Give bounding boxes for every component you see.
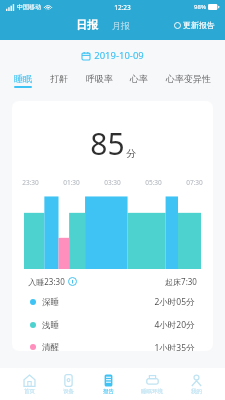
staticText: 05:30 bbox=[145, 178, 162, 187]
staticText: 2小时05分 bbox=[154, 296, 195, 308]
staticText: 设备 bbox=[63, 388, 74, 395]
button[interactable]: 睡眠 bbox=[12, 73, 34, 88]
staticText: 呼吸率 bbox=[86, 73, 113, 84]
button[interactable]: 打鼾 bbox=[48, 73, 70, 88]
staticText: 睡眠环境 bbox=[141, 388, 163, 395]
staticText: 心率 bbox=[130, 73, 148, 84]
staticText: 12:23 bbox=[114, 3, 131, 12]
staticText: 中国移动 bbox=[17, 3, 41, 11]
staticText: 4小时20分 bbox=[154, 319, 195, 331]
staticText: 我的 bbox=[191, 388, 202, 395]
staticText: 睡眠 bbox=[14, 73, 32, 84]
button[interactable]: 设备 bbox=[58, 372, 79, 397]
staticText: 2019-10-09 bbox=[94, 49, 144, 62]
staticText: 月报 bbox=[112, 20, 130, 31]
button[interactable]: 心率变异性 bbox=[164, 73, 213, 88]
staticText: 起床7:30 bbox=[165, 276, 197, 287]
staticText: 1小时35分 bbox=[154, 342, 195, 351]
staticText: 07:30 bbox=[186, 178, 203, 187]
staticText: 更新报告 bbox=[183, 20, 215, 30]
button[interactable]: 日报 bbox=[76, 18, 98, 32]
staticText: 日报 bbox=[76, 18, 98, 32]
staticText: 分 bbox=[126, 147, 136, 160]
button[interactable]: 心率 bbox=[128, 73, 150, 88]
staticText: 85 bbox=[90, 123, 125, 164]
button[interactable]: 首页 bbox=[19, 372, 40, 397]
staticText: 98% bbox=[194, 3, 206, 11]
staticText: 01:30 bbox=[63, 178, 80, 187]
button[interactable]: 呼吸率 bbox=[84, 73, 115, 88]
staticText: 报告 bbox=[103, 388, 114, 395]
button[interactable]: 睡眠说明 bbox=[68, 277, 77, 286]
button[interactable]: 睡眠环境 bbox=[137, 372, 167, 397]
button[interactable]: 月报 bbox=[112, 20, 130, 31]
button[interactable]: 报告 bbox=[98, 372, 119, 397]
button[interactable]: 更新报告 bbox=[174, 20, 225, 30]
button[interactable]: 2019-10-09 bbox=[82, 49, 144, 62]
staticText: 深睡 bbox=[42, 297, 59, 308]
staticText: 入睡23:30 bbox=[28, 276, 65, 287]
staticText: 首页 bbox=[24, 388, 35, 395]
staticText: 心率变异性 bbox=[166, 73, 211, 84]
staticText: 打鼾 bbox=[50, 73, 68, 84]
staticText: 03:30 bbox=[104, 178, 121, 187]
staticText: 清醒 bbox=[42, 342, 59, 351]
button[interactable]: 我的 bbox=[186, 372, 207, 397]
staticText: 浅睡 bbox=[42, 320, 59, 331]
staticText: 23:30 bbox=[22, 178, 39, 187]
